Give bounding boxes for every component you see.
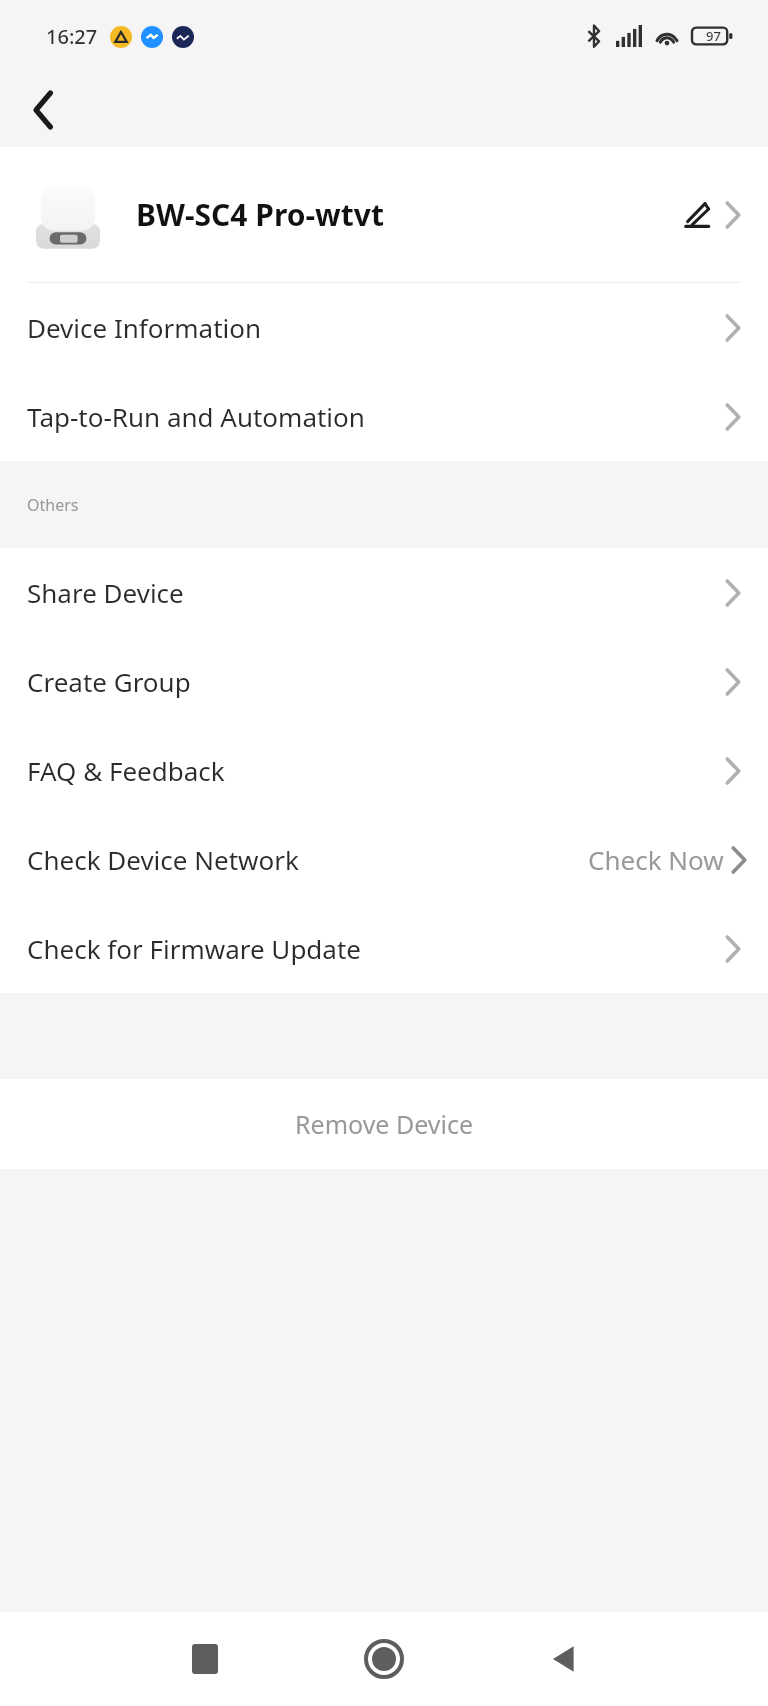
button[interactable]: Share Device xyxy=(0,548,768,637)
button[interactable]: FAQ & Feedback xyxy=(0,726,768,815)
staticText: Check Now xyxy=(588,842,724,877)
staticText: Remove Device xyxy=(295,1107,474,1141)
staticText: 97 xyxy=(706,27,721,45)
button[interactable]: Home xyxy=(349,1624,419,1694)
staticText: Check Device Network xyxy=(27,842,299,877)
staticText: 16:27 xyxy=(46,23,98,50)
staticText: Device Information xyxy=(27,310,262,345)
button[interactable]: BW-SC4 Pro-wtvt xyxy=(0,147,768,282)
staticText: BW-SC4 Pro-wtvt xyxy=(136,194,384,235)
staticText: FAQ & Feedback xyxy=(27,753,225,788)
button[interactable]: Back xyxy=(18,84,70,136)
button[interactable]: Check for Firmware Update xyxy=(0,904,768,993)
button[interactable]: Back xyxy=(528,1624,598,1694)
button[interactable]: Device Information xyxy=(0,283,768,372)
staticText: Check for Firmware Update xyxy=(27,931,361,966)
button[interactable]: Tap-to-Run and Automation xyxy=(0,372,768,461)
button[interactable]: Remove Device xyxy=(0,1079,768,1169)
staticText: Others xyxy=(27,494,79,516)
button[interactable]: Check Device Network xyxy=(0,815,768,904)
staticText: Share Device xyxy=(27,575,184,610)
staticText: Create Group xyxy=(27,664,191,699)
staticText: Tap-to-Run and Automation xyxy=(27,399,365,434)
button[interactable]: Create Group xyxy=(0,637,768,726)
button[interactable]: Recents xyxy=(170,1624,240,1694)
button[interactable]: Rename xyxy=(672,191,720,239)
